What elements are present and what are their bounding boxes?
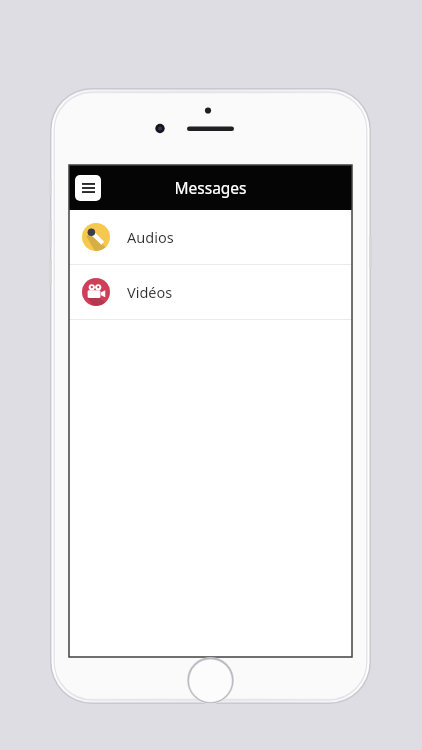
staticText: Messages <box>69 177 352 198</box>
staticText: Audios <box>127 227 174 247</box>
button[interactable]: Audios <box>69 210 352 264</box>
staticText: Vidéos <box>127 282 173 302</box>
button[interactable]: Menu <box>75 175 101 201</box>
button[interactable]: Vidéos <box>69 265 352 319</box>
